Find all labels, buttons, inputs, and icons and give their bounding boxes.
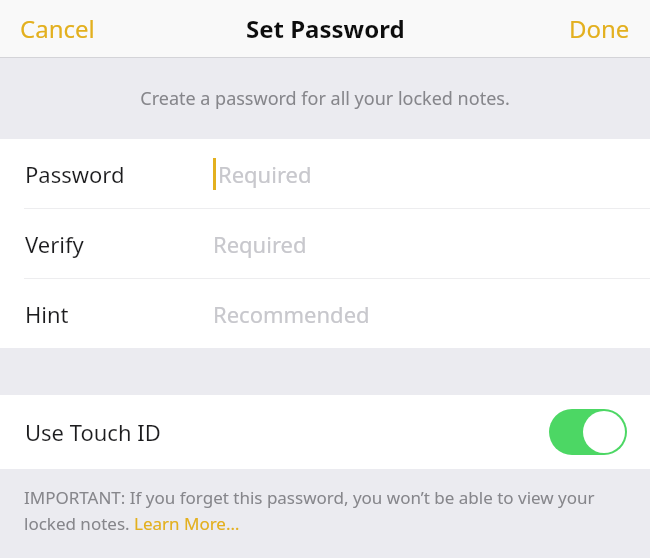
button[interactable]: Hint xyxy=(0,279,650,348)
button[interactable]: Done xyxy=(553,2,650,55)
staticText: Cancel xyxy=(20,12,95,45)
button[interactable]: Password xyxy=(0,139,650,208)
staticText: Required xyxy=(218,159,312,189)
staticText: Use Touch ID xyxy=(25,417,161,447)
staticText: Required xyxy=(213,229,307,259)
staticText: Recommended xyxy=(213,299,370,329)
button[interactable]: Use Touch ID, on xyxy=(549,409,627,455)
staticText: Verify xyxy=(25,229,84,259)
staticText: IMPORTANT: If you forget this password, … xyxy=(24,486,620,535)
staticText: Set Password xyxy=(246,12,405,45)
button[interactable]: Use Touch ID xyxy=(0,395,650,469)
staticText: Password xyxy=(25,159,125,189)
staticText: Hint xyxy=(25,299,69,329)
staticText: Done xyxy=(569,12,630,45)
button[interactable]: Verify xyxy=(0,209,650,278)
staticText: Create a password for all your locked no… xyxy=(140,86,510,111)
button[interactable]: IMPORTANT: If you forget this password, … xyxy=(24,486,620,535)
button[interactable]: Cancel xyxy=(0,2,111,55)
